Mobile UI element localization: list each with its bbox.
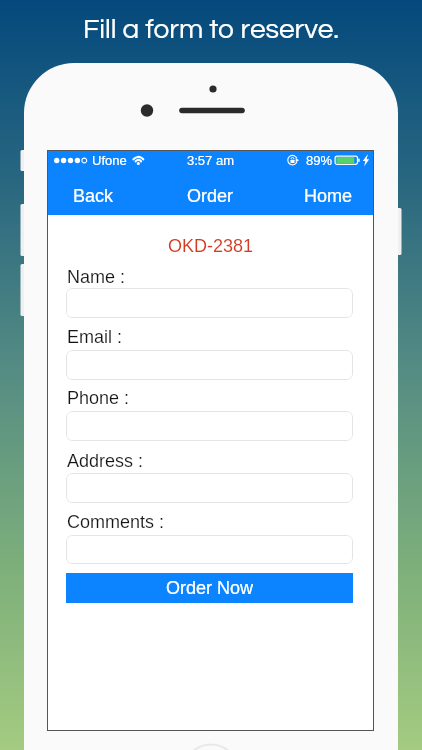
staticText: OKD-2381	[168, 236, 254, 256]
button[interactable]	[66, 411, 353, 441]
staticText: 3:57 am	[187, 153, 234, 168]
button[interactable]: Home	[284, 172, 372, 215]
staticText: Ufone	[92, 153, 127, 168]
staticText: Fill a form to reserve.	[83, 15, 339, 44]
staticText: Address :	[67, 451, 144, 471]
button[interactable]	[66, 535, 353, 564]
staticText: Order Now	[166, 578, 254, 598]
staticText: Order	[187, 186, 234, 206]
staticText: 89%	[306, 153, 333, 168]
staticText: Name :	[67, 267, 126, 287]
button[interactable]	[66, 350, 353, 380]
button[interactable]: Order	[166, 172, 254, 215]
staticText: Phone :	[67, 388, 130, 408]
staticText: Email :	[67, 327, 123, 347]
button[interactable]	[66, 288, 353, 318]
button[interactable]: Order Now	[66, 573, 353, 603]
button[interactable]	[66, 473, 353, 503]
staticText: Home	[304, 186, 353, 206]
button[interactable]: Back	[49, 172, 137, 215]
staticText: Back	[73, 186, 114, 206]
staticText: Comments :	[67, 512, 165, 532]
